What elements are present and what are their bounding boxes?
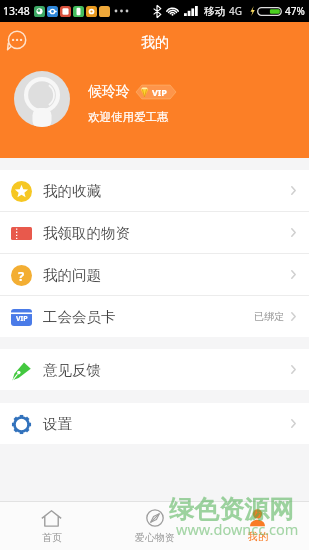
staticText: 我的问题: [43, 266, 101, 284]
staticText: VIP: [152, 86, 167, 98]
button[interactable]: 设置: [0, 403, 309, 444]
staticText: 爱心物资: [135, 531, 175, 544]
button[interactable]: VIP: [0, 296, 309, 337]
staticText: ?: [18, 267, 25, 285]
staticText: 我的: [141, 34, 169, 52]
staticText: 4G: [229, 4, 242, 18]
staticText: 47%: [285, 4, 305, 18]
button[interactable]: Messages: [3, 27, 29, 53]
staticText: 首页: [42, 531, 62, 544]
staticText: 已绑定: [254, 310, 284, 323]
staticText: 欢迎使用爱工惠: [88, 110, 169, 124]
button[interactable]: 我的: [206, 502, 309, 550]
button[interactable]: 首页: [0, 502, 103, 550]
staticText: 移动: [204, 5, 225, 18]
staticText: 13:48: [3, 4, 30, 18]
button[interactable]: 意见反馈: [0, 349, 309, 390]
button[interactable]: 爱心物资: [103, 502, 206, 550]
button[interactable]: ?: [0, 254, 309, 295]
staticText: 意见反馈: [43, 361, 101, 379]
staticText: 候玲玲: [88, 83, 130, 101]
staticText: VIP: [16, 314, 28, 324]
staticText: 绿色资源网: [169, 494, 294, 525]
staticText: 我领取的物资: [43, 224, 130, 242]
button[interactable]: 我领取的物资: [0, 212, 309, 254]
button[interactable]: 我的收藏: [0, 170, 309, 212]
staticText: 设置: [43, 415, 72, 433]
staticText: 我的: [248, 530, 268, 543]
staticText: 工会会员卡: [43, 308, 116, 326]
staticText: www.downcc.com: [176, 519, 299, 539]
staticText: 我的收藏: [43, 182, 101, 200]
